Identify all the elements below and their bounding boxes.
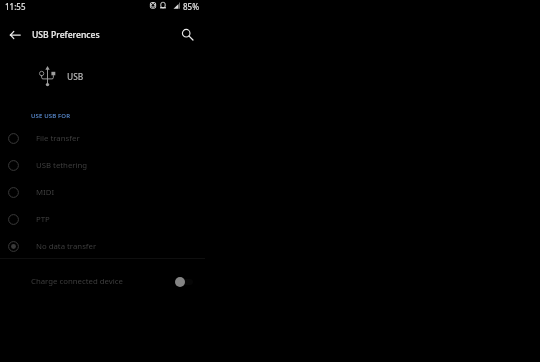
button[interactable]: Search	[175, 22, 199, 46]
button[interactable]: USB tethering	[0, 152, 207, 179]
button[interactable]: Back	[3, 23, 27, 47]
button[interactable]	[0, 58, 207, 94]
staticText: USB	[67, 71, 84, 82]
staticText: PTP	[36, 214, 50, 225]
button[interactable]: MIDI	[0, 179, 207, 206]
staticText: 11:55	[5, 1, 26, 12]
staticText: No data transfer	[36, 241, 97, 252]
button[interactable]: PTP	[0, 206, 207, 233]
button[interactable]: Charge connected device	[0, 266, 207, 297]
button[interactable]: No data transfer	[0, 233, 207, 260]
staticText: USB Preferences	[32, 29, 100, 41]
button[interactable]: File transfer	[0, 125, 207, 152]
staticText: USB tethering	[36, 160, 88, 171]
staticText: 85%	[183, 1, 199, 12]
staticText: Charge connected device	[31, 276, 123, 287]
staticText: USE USB FOR	[31, 112, 71, 120]
staticText: MIDI	[36, 187, 55, 198]
staticText: File transfer	[36, 133, 80, 144]
